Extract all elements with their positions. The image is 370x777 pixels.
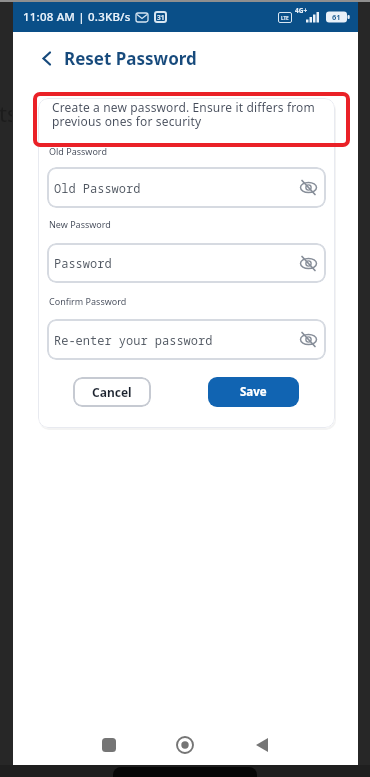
button[interactable]: [248, 731, 276, 759]
button[interactable]: [95, 731, 123, 759]
staticText: Password: [54, 255, 112, 271]
staticText: LTE: [281, 15, 289, 21]
button[interactable]: Password: [47, 243, 326, 283]
button[interactable]: [41, 44, 241, 74]
button[interactable]: [171, 731, 199, 759]
staticText: 61: [332, 12, 341, 22]
staticText: 31: [157, 13, 165, 22]
staticText: Reset Password: [64, 47, 197, 70]
staticText: Confirm Password: [49, 295, 127, 307]
staticText: Save: [240, 384, 267, 400]
staticText: 4G+: [295, 6, 308, 15]
staticText: Old Password: [49, 145, 107, 157]
button[interactable]: Old Password: [47, 167, 326, 208]
staticText: Re-enter your password: [54, 332, 213, 348]
staticText: ts: [0, 98, 12, 128]
staticText: Cancel: [92, 384, 132, 400]
button[interactable]: Re-enter your password: [47, 319, 326, 360]
button[interactable]: Cancel: [73, 377, 151, 407]
staticText: New Password: [49, 218, 111, 230]
staticText: Old Password: [54, 180, 141, 196]
staticText: Create a new password. Ensure it differs…: [52, 99, 315, 129]
button[interactable]: Save: [208, 377, 299, 407]
staticText: 11:08 AM | 0.3KB/s: [23, 9, 131, 25]
